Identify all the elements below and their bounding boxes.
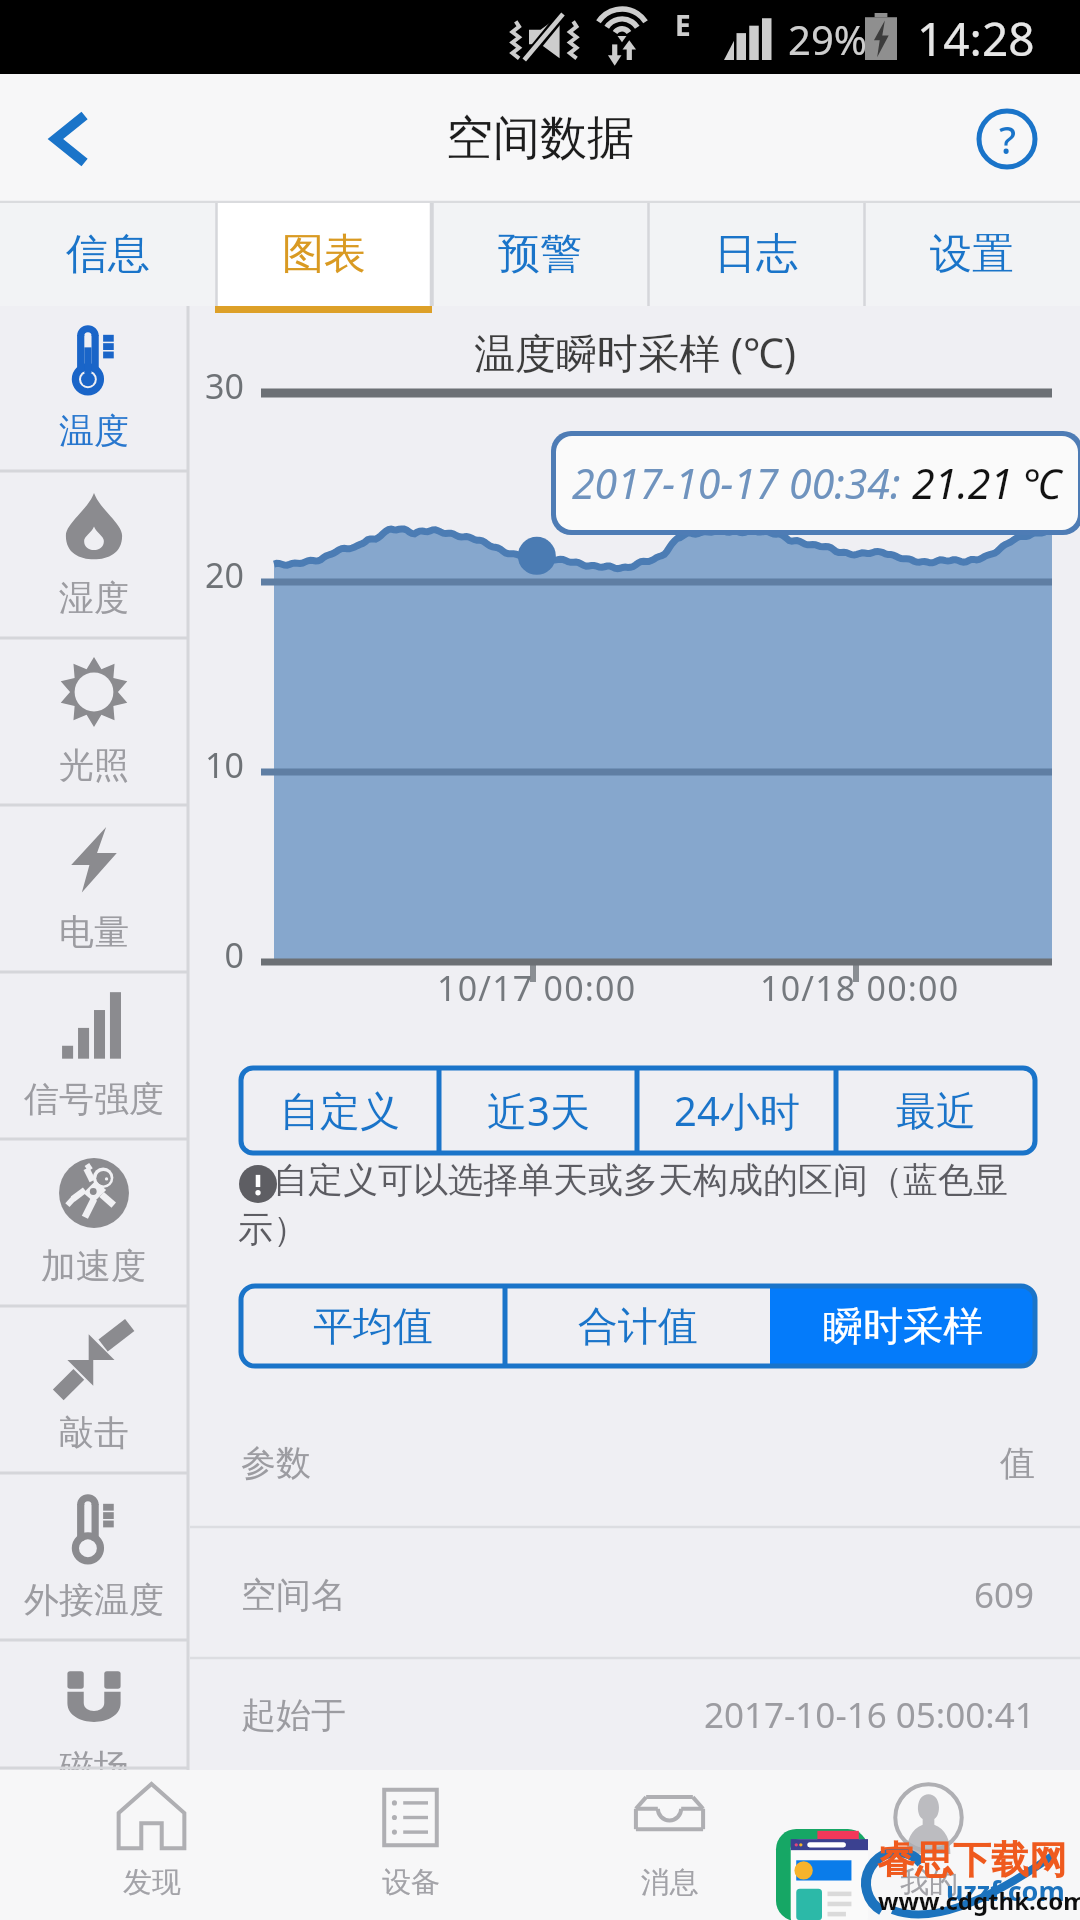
staticText: 睿思下载网	[877, 1836, 1067, 1884]
button[interactable]: 光照	[0, 640, 187, 807]
staticText: 24小时	[674, 1083, 800, 1138]
staticText: 信号强度	[24, 1077, 164, 1121]
button[interactable]: 设备	[281, 1770, 540, 1920]
button[interactable]: 合计值	[505, 1286, 770, 1366]
staticText: 瞬时采样	[823, 1301, 983, 1351]
staticText: 示）	[238, 1207, 308, 1251]
staticText: 近3天	[487, 1083, 590, 1138]
button[interactable]: 湿度	[0, 473, 187, 640]
staticText: 29%	[788, 12, 867, 66]
staticText: 起始于	[241, 1693, 346, 1737]
staticText: 10/18 00:00	[760, 965, 960, 1011]
button[interactable]: 电量	[0, 807, 187, 974]
staticText: 值	[1000, 1441, 1035, 1485]
staticText: 敲击	[59, 1411, 129, 1455]
button[interactable]: 平均值	[241, 1286, 505, 1366]
staticText: 平均值	[313, 1301, 433, 1351]
staticText: 2017-10-17 00:34:	[572, 455, 912, 511]
staticText: 14:28	[917, 7, 1035, 70]
staticText: 自定义	[280, 1086, 400, 1136]
button[interactable]: 信号强度	[0, 974, 187, 1141]
staticText: uzzf.com	[946, 1872, 1065, 1909]
staticText: ?	[999, 113, 1016, 165]
staticText: 空间数据	[446, 109, 634, 168]
button[interactable]: 近3天	[439, 1068, 637, 1153]
button[interactable]: Back	[22, 91, 118, 187]
button[interactable]: 信息	[0, 203, 216, 306]
staticText: 30	[196, 363, 244, 409]
button[interactable]: 空间名	[190, 1529, 1080, 1660]
staticText: 消息	[641, 1864, 699, 1901]
staticText: 日志	[714, 228, 798, 281]
button[interactable]: 发现	[22, 1770, 281, 1920]
button[interactable]: 图表	[216, 203, 432, 306]
staticText: 信息	[66, 228, 150, 281]
staticText: 合计值	[578, 1301, 698, 1351]
staticText: E	[675, 6, 691, 44]
staticText: 参数	[241, 1441, 311, 1485]
staticText: 0	[196, 932, 244, 978]
button[interactable]: 敲击	[0, 1308, 187, 1475]
button[interactable]: 设置	[864, 203, 1080, 306]
button[interactable]: Help	[964, 96, 1050, 182]
staticText: 空间名	[241, 1573, 346, 1617]
staticText: 磁场	[59, 1745, 129, 1770]
staticText: 10	[196, 742, 244, 788]
staticText: 609	[974, 1571, 1035, 1619]
button[interactable]: 瞬时采样	[770, 1286, 1035, 1366]
staticText: 20	[196, 552, 244, 598]
staticText: 发现	[123, 1864, 181, 1901]
staticText: 10/17 00:00	[437, 965, 637, 1011]
staticText: 21.21 ℃	[912, 455, 1062, 511]
staticText: www.cdgthk.com	[878, 1884, 1080, 1917]
button[interactable]: 加速度	[0, 1141, 187, 1308]
staticText: 设置	[930, 228, 1014, 281]
staticText: 湿度	[59, 576, 129, 620]
staticText: 预警	[498, 228, 582, 281]
staticText: 加速度	[41, 1244, 146, 1288]
staticText: 温度瞬时采样 (℃)	[474, 324, 797, 380]
staticText: 温度	[59, 409, 129, 453]
staticText: 外接温度	[24, 1578, 164, 1622]
button[interactable]: 2017-10-17 00:34:	[556, 436, 1078, 530]
staticText: 电量	[59, 910, 129, 954]
staticText: 2017-10-16 05:00:41	[704, 1691, 1035, 1739]
button[interactable]: 起始于	[190, 1660, 1080, 1770]
button[interactable]: 参数	[190, 1397, 1080, 1529]
button[interactable]: 日志	[648, 203, 864, 306]
staticText: 最近	[896, 1086, 976, 1136]
staticText: 设备	[382, 1864, 440, 1901]
button[interactable]: 预警	[432, 203, 648, 306]
button[interactable]: 我的	[799, 1770, 1058, 1920]
staticText: 我的	[900, 1864, 958, 1901]
button[interactable]: 24小时	[637, 1068, 836, 1153]
button[interactable]: 自定义	[241, 1068, 439, 1153]
staticText: 图表	[282, 228, 366, 281]
button[interactable]: 外接温度	[0, 1475, 187, 1642]
button[interactable]: 最近	[836, 1068, 1035, 1153]
staticText: 光照	[59, 743, 129, 787]
button[interactable]: 磁场	[0, 1642, 187, 1770]
staticText: 自定义可以选择单天或多天构成的区间（蓝色显	[238, 1155, 1008, 1203]
button[interactable]: 温度	[0, 306, 187, 473]
button[interactable]: 消息	[540, 1770, 799, 1920]
